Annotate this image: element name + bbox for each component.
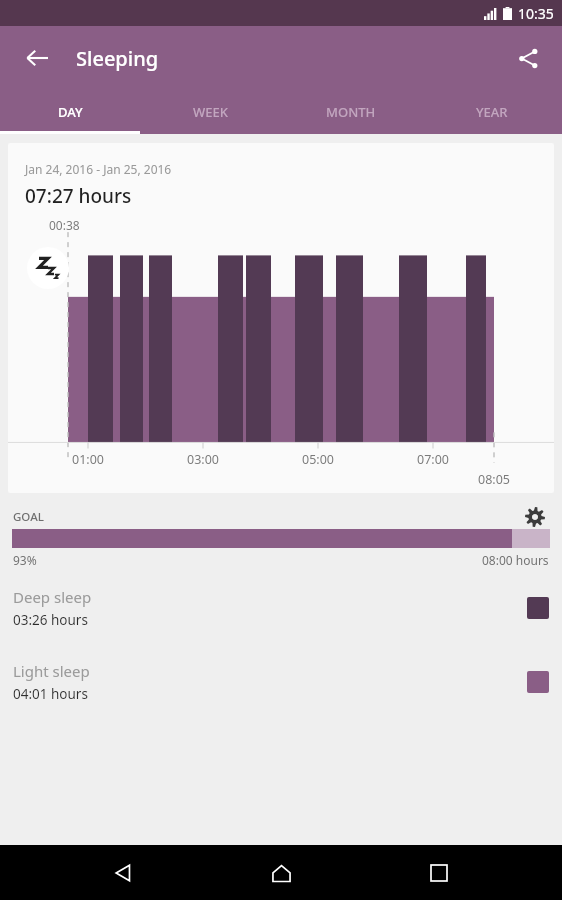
staticText: YEAR	[476, 103, 508, 121]
staticText: 04:01 hours	[13, 685, 88, 703]
staticText: 08:05	[478, 471, 510, 488]
button[interactable]: Deep sleep	[0, 582, 562, 634]
button[interactable]: Home	[255, 847, 307, 899]
staticText: 93%	[13, 552, 37, 568]
staticText: 10:35	[518, 4, 554, 23]
staticText: 00:38	[49, 217, 80, 233]
button[interactable]: YEAR	[421, 90, 562, 134]
button[interactable]: DAY	[0, 90, 140, 134]
button[interactable]: Recents	[413, 847, 465, 899]
button[interactable]: Light sleep	[0, 656, 562, 708]
button[interactable]: WEEK	[140, 90, 280, 134]
staticText: Light sleep	[13, 661, 90, 681]
button[interactable]: Jan 24, 2016 - Jan 25, 2016	[8, 143, 554, 493]
staticText: GOAL	[13, 509, 44, 525]
button[interactable]: Goal settings	[520, 505, 550, 529]
staticText: Jan 24, 2016 - Jan 25, 2016	[25, 161, 172, 177]
staticText: 07:00	[417, 451, 449, 468]
staticText: 03:26 hours	[13, 611, 88, 629]
button[interactable]: Back	[14, 35, 60, 81]
staticText: 03:00	[187, 451, 219, 468]
staticText: Sleeping	[76, 45, 159, 72]
button[interactable]: GOAL	[0, 505, 562, 568]
staticText: 05:00	[302, 451, 334, 468]
staticText: WEEK	[193, 103, 228, 121]
staticText: MONTH	[326, 103, 376, 121]
staticText: 08:00 hours	[482, 552, 549, 568]
button[interactable]: MONTH	[280, 90, 421, 134]
staticText: 01:00	[72, 451, 104, 468]
button[interactable]: Back	[97, 847, 149, 899]
button[interactable]: Share	[504, 34, 552, 82]
staticText: DAY	[58, 103, 83, 121]
staticText: Deep sleep	[13, 587, 92, 607]
staticText: 07:27 hours	[25, 183, 132, 209]
